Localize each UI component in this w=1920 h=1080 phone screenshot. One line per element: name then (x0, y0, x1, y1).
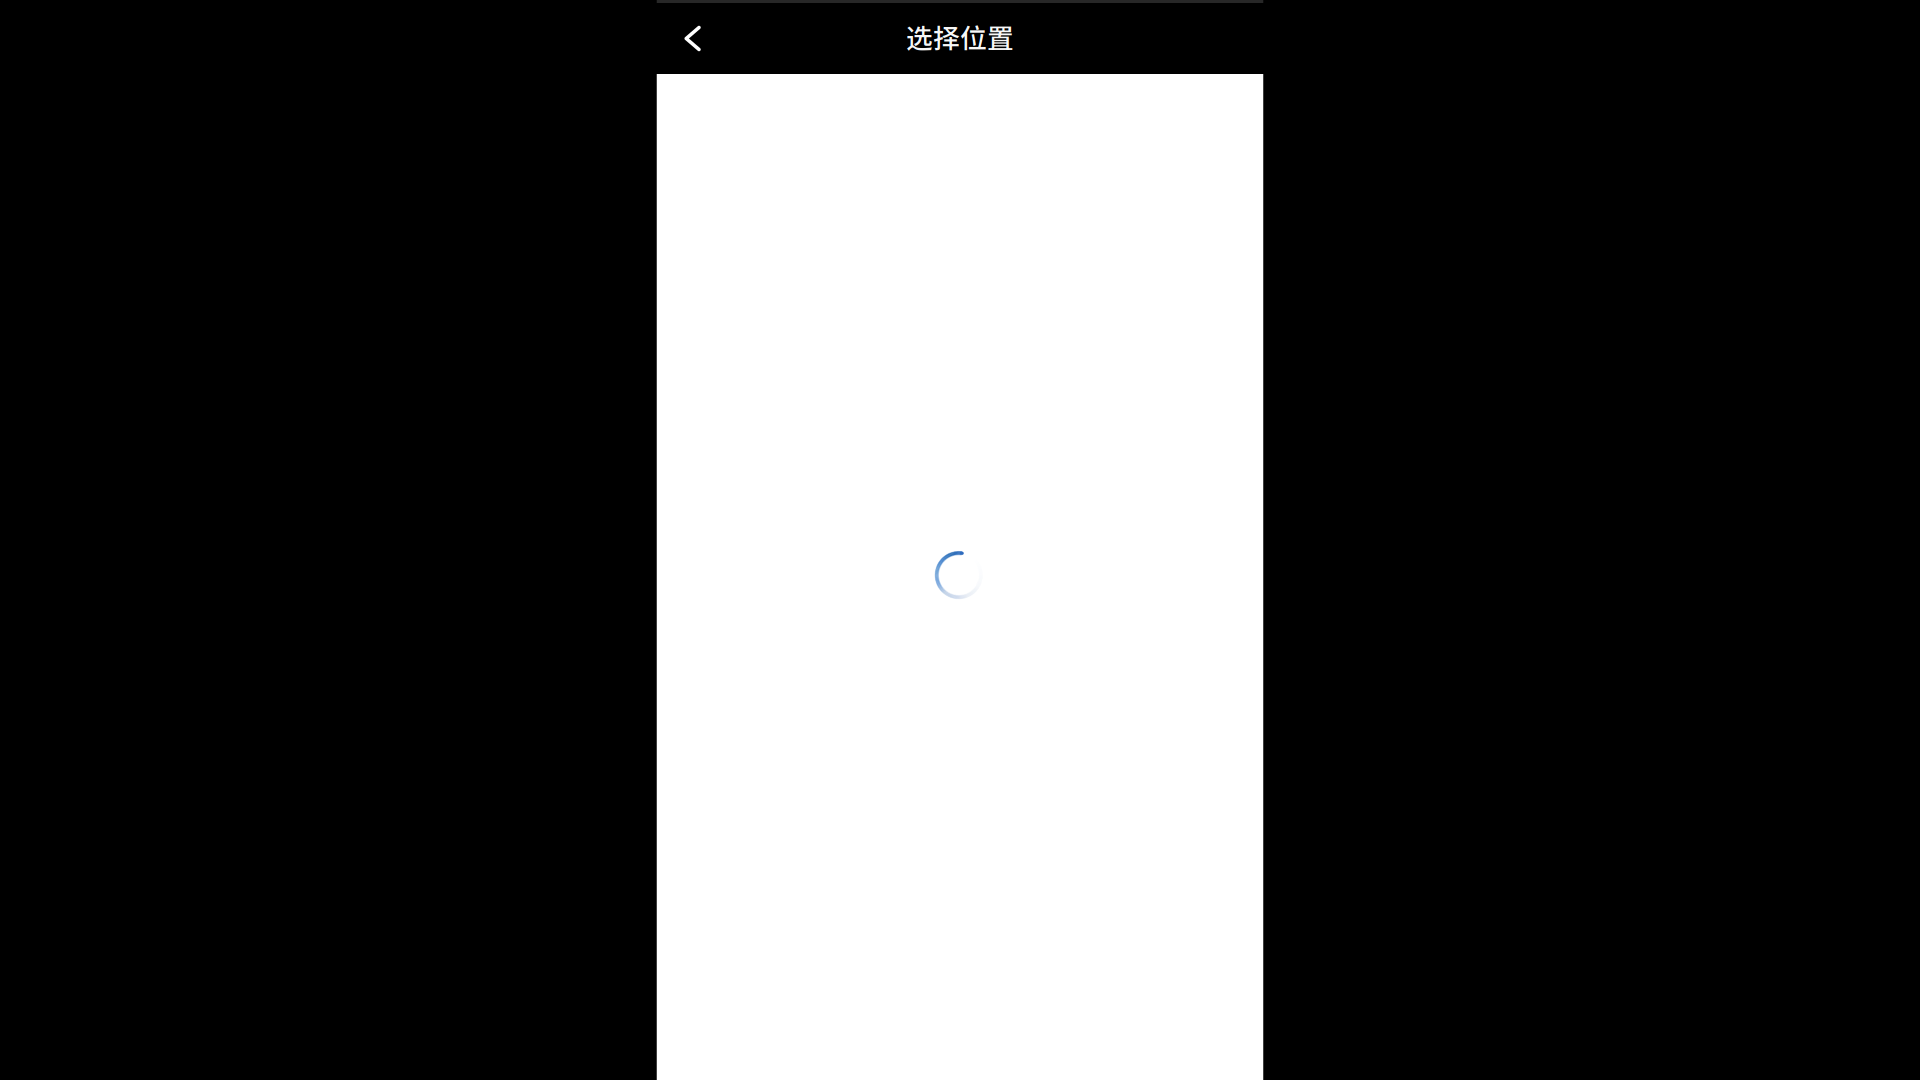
staticText: 选择位置 (906, 17, 1014, 56)
button[interactable]: 返回 (657, 3, 721, 74)
